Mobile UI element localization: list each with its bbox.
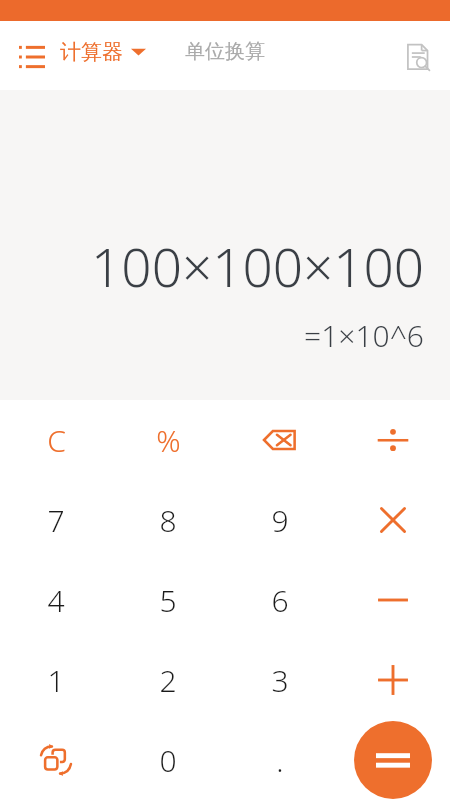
staticText: 7 [47, 500, 65, 541]
staticText: % [156, 420, 181, 461]
staticText: 6 [271, 580, 289, 621]
button[interactable]: Convert [16, 726, 96, 794]
button[interactable]: Minus [353, 566, 433, 634]
button[interactable]: 4 [16, 566, 96, 634]
staticText: =1×10^6 [304, 315, 424, 356]
button[interactable]: History [398, 37, 438, 77]
button[interactable]: Multiply [353, 486, 433, 554]
button[interactable]: 9 [240, 486, 320, 554]
button[interactable]: Equals [354, 721, 432, 799]
staticText: 1 [47, 660, 65, 701]
button[interactable]: 2 [128, 646, 208, 714]
staticText: 计算器 [60, 39, 123, 65]
button[interactable]: 单位换算 [185, 39, 265, 64]
staticText: 单位换算 [185, 39, 265, 64]
button[interactable]: 6 [240, 566, 320, 634]
staticText: 2 [159, 660, 177, 701]
staticText: 5 [159, 580, 177, 621]
button[interactable]: Menu [12, 37, 52, 77]
staticText: 4 [47, 580, 65, 621]
staticText: 8 [159, 500, 177, 541]
button[interactable]: Divide [353, 406, 433, 474]
button[interactable]: 8 [128, 486, 208, 554]
staticText: 3 [271, 660, 289, 701]
button[interactable]: 5 [128, 566, 208, 634]
staticText: 9 [271, 500, 289, 541]
button[interactable]: C [16, 406, 96, 474]
button[interactable]: Plus [353, 646, 433, 714]
staticText: C [47, 420, 66, 461]
staticText: 100×100×100 [91, 230, 424, 302]
button[interactable]: % [128, 406, 208, 474]
button[interactable]: 0 [128, 726, 208, 794]
button[interactable]: 计算器 [60, 39, 146, 65]
button[interactable]: Backspace [240, 406, 320, 474]
button[interactable]: . [240, 726, 320, 794]
staticText: . [276, 740, 284, 781]
button[interactable]: 7 [16, 486, 96, 554]
staticText: 0 [159, 740, 177, 781]
button[interactable]: 1 [16, 646, 96, 714]
button[interactable]: 3 [240, 646, 320, 714]
